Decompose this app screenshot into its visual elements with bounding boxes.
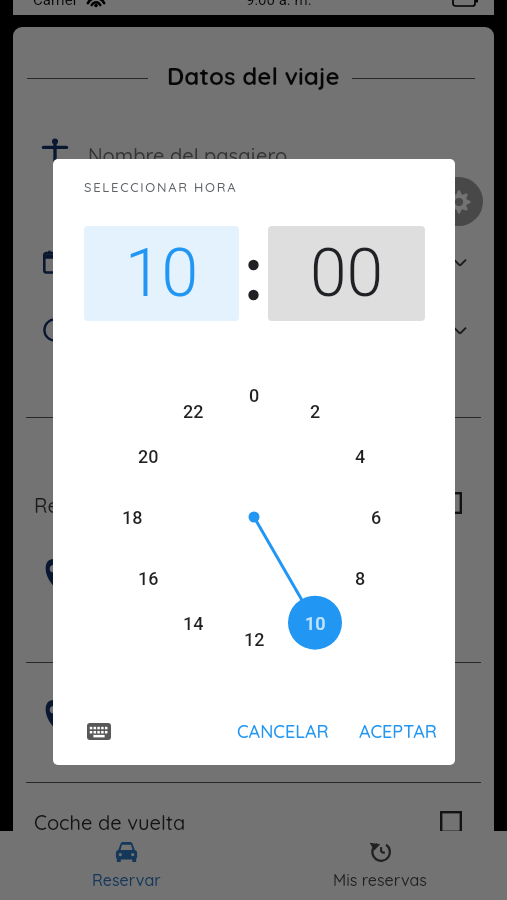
staticText: Carrier (33, 0, 78, 9)
button[interactable]: 10 (84, 226, 239, 321)
button[interactable]: CANCELAR (231, 711, 334, 751)
staticText: Reservar (92, 870, 161, 890)
staticText: CANCELAR (237, 720, 329, 743)
staticText: Coche de vuelta (34, 810, 186, 831)
button[interactable]: Desplegar (450, 320, 470, 340)
button[interactable]: Ajustes (434, 177, 483, 226)
button[interactable]: Coche de vuelta (34, 810, 186, 831)
staticText: 22 (183, 401, 204, 422)
staticText: 20 (138, 446, 159, 467)
button[interactable]: Cambiar a entrada de texto (74, 712, 124, 750)
button[interactable]: 0 (227, 368, 281, 422)
staticText: 9:00 a. m. (246, 0, 312, 9)
staticText: ACEPTAR (359, 720, 438, 743)
staticText: Recogida (34, 493, 124, 518)
button[interactable]: Fecha (88, 254, 145, 279)
staticText: 10 (305, 613, 326, 634)
button[interactable]: 4 (333, 429, 387, 483)
staticText: 18 (122, 507, 143, 528)
button[interactable]: 18 (105, 490, 159, 544)
button[interactable]: 6 (349, 490, 403, 544)
button[interactable]: Desplegar (450, 252, 470, 272)
staticText: 6 (371, 507, 382, 528)
button[interactable]: Nombre del pasajero (88, 143, 288, 168)
button[interactable]: Casilla (440, 811, 462, 831)
staticText: Fecha (88, 254, 145, 279)
button[interactable]: 22 (166, 384, 220, 438)
staticText: Mis reservas (333, 870, 427, 890)
button[interactable]: ACEPTAR (354, 711, 442, 751)
button[interactable]: 00 (268, 226, 425, 321)
staticText: 10 (125, 235, 199, 312)
button[interactable]: Casilla (440, 492, 462, 514)
staticText: Datos del viaje (167, 61, 340, 91)
button[interactable]: Mis reservas (253, 831, 507, 900)
button[interactable]: 10 (288, 596, 342, 650)
button[interactable]: 14 (166, 596, 220, 650)
staticText: 2 (310, 401, 321, 422)
staticText: 00 (310, 235, 384, 312)
button[interactable]: Recogida (34, 493, 124, 518)
button[interactable]: 16 (121, 551, 175, 605)
button[interactable]: 20 (121, 429, 175, 483)
button[interactable]: Reservar (0, 831, 253, 900)
staticText: 4 (355, 446, 366, 467)
staticText: SELECCIONAR HORA (84, 179, 238, 195)
staticText: 0 (249, 385, 260, 406)
button[interactable]: 8 (333, 551, 387, 605)
staticText: 12 (244, 629, 265, 650)
button[interactable]: 12 (227, 612, 281, 666)
staticText: 14 (183, 613, 204, 634)
staticText: 8 (355, 568, 366, 589)
staticText: 16 (138, 568, 159, 589)
staticText: Nombre del pasajero (88, 143, 288, 168)
button[interactable]: 2 (288, 384, 342, 438)
